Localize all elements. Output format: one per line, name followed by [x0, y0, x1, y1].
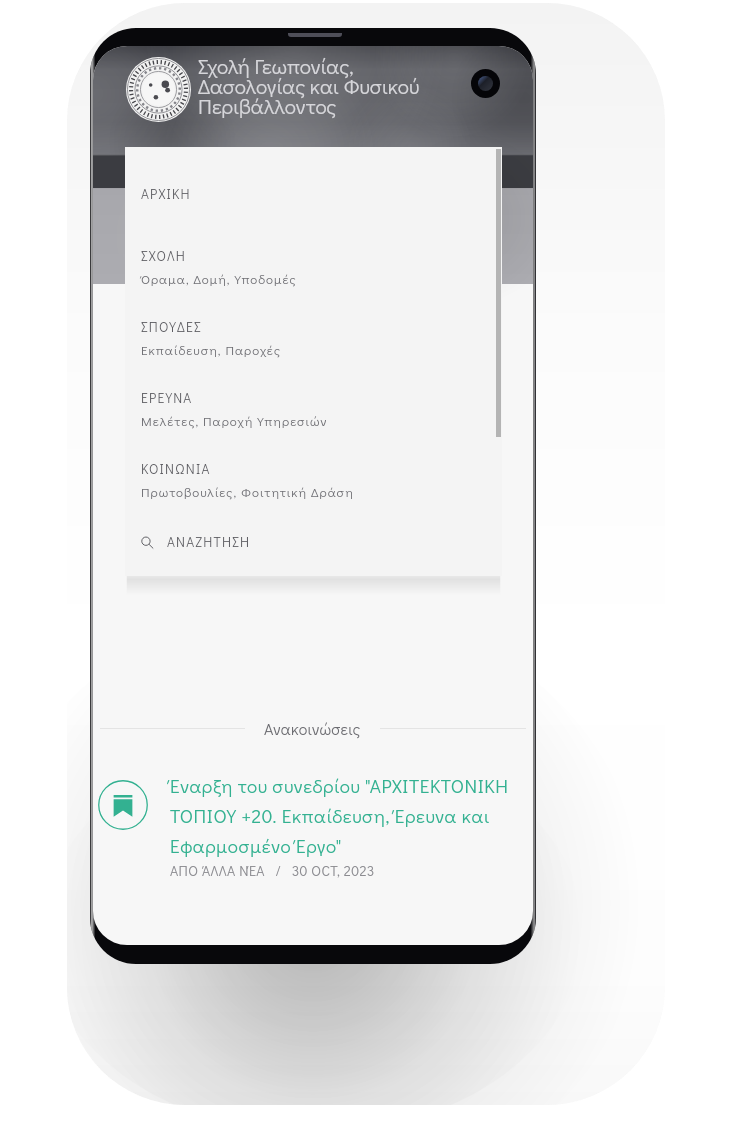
staticText: Ανακοινώσεις — [264, 718, 361, 739]
button[interactable]: ΣΠΟΥΔΕΣ — [141, 318, 281, 358]
button[interactable]: Έναρξη του συνεδρίου "ΑΡΧΙΤΕΚΤΟΝΙΚΗ ΤΟΠΙ… — [93, 773, 533, 879]
button[interactable]: ΑΝΑΖΗΤΗΣΗ — [141, 533, 251, 551]
staticText: ΑΝΑΖΗΤΗΣΗ — [167, 533, 251, 551]
staticText: Σχολή Γεωπονίας, Δασολογίας και Φυσικού … — [198, 52, 420, 119]
staticText: Όραμα, Δομή, Υποδομές — [141, 270, 297, 287]
button[interactable]: ΕΡΕΥΝΑ — [141, 389, 328, 429]
button[interactable]: ΚΟΙΝΩΝΙΑ — [141, 460, 354, 500]
staticText: ΣΠΟΥΔΕΣ — [141, 318, 202, 336]
staticText: ΕΡΕΥΝΑ — [141, 389, 193, 407]
staticText: Εκπαίδευση, Παροχές — [141, 341, 281, 358]
staticText: ΑΠΟ ΆΛΛΑ ΝΈΑ / 30 OCT, 2023 — [170, 861, 375, 879]
staticText: Μελέτες, Παροχή Υπηρεσιών — [141, 412, 328, 429]
staticText: ΑΡΧΙΚΗ — [141, 185, 191, 203]
staticText: Έναρξη του συνεδρίου "ΑΡΧΙΤΕΚΤΟΝΙΚΗ ΤΟΠΙ… — [170, 773, 510, 858]
staticText: ΣΧΟΛΗ — [141, 247, 187, 265]
staticText: Πρωτοβουλίες, Φοιτητική Δράση — [141, 483, 354, 500]
staticText: ΚΟΙΝΩΝΙΑ — [141, 460, 211, 478]
button[interactable]: ΑΡΧΙΚΗ — [141, 185, 191, 203]
button[interactable]: ΣΧΟΛΗ — [141, 247, 297, 287]
